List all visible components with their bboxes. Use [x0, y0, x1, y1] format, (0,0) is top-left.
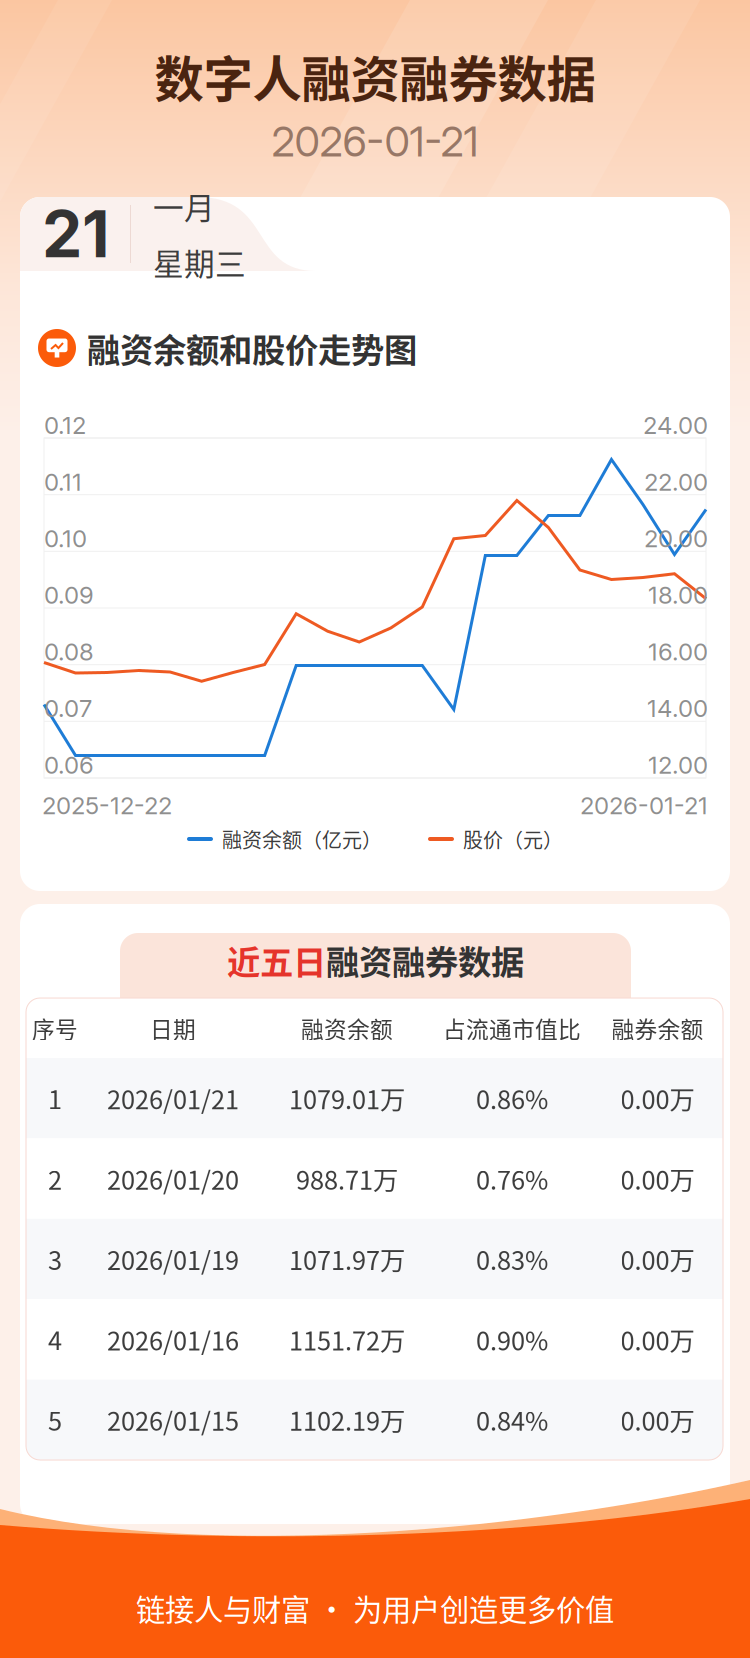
- staticText: 22.00: [644, 467, 708, 496]
- staticText: 2: [48, 1160, 62, 1197]
- staticText: 日期: [150, 1012, 196, 1044]
- staticText: 0.07: [44, 694, 92, 723]
- staticText: 16.00: [648, 637, 708, 666]
- staticText: 2026-01-21: [580, 791, 708, 820]
- staticText: 融资融券数据: [326, 936, 524, 984]
- staticText: 序号: [32, 1012, 78, 1044]
- staticText: 0.08: [44, 637, 94, 666]
- staticText: 0.00万: [620, 1321, 694, 1358]
- staticText: 0.84%: [476, 1401, 548, 1438]
- staticText: 2026/01/15: [107, 1401, 239, 1438]
- staticText: 0.86%: [476, 1080, 548, 1117]
- staticText: 一月: [153, 184, 215, 228]
- staticText: 0.83%: [476, 1241, 548, 1277]
- staticText: 占流通市值比: [443, 1012, 581, 1044]
- staticText: 3: [48, 1241, 62, 1277]
- staticText: 0.00万: [620, 1401, 694, 1438]
- staticText: 1151.72万: [289, 1321, 405, 1358]
- staticText: 988.71万: [296, 1160, 398, 1197]
- staticText: 2026/01/19: [107, 1241, 239, 1277]
- staticText: 21: [42, 195, 110, 273]
- staticText: 融资余额（亿元）: [222, 824, 382, 853]
- staticText: 融资余额和股价走势图: [87, 324, 417, 372]
- staticText: 股价（元）: [463, 824, 563, 853]
- staticText: 链接人与财富 · 为用户创造更多价值: [136, 1587, 614, 1629]
- staticText: 0.00万: [620, 1080, 694, 1117]
- staticText: 2025-12-22: [42, 791, 172, 820]
- staticText: 2026/01/16: [107, 1321, 239, 1358]
- staticText: 24.00: [643, 411, 708, 440]
- staticText: 融券余额: [611, 1012, 703, 1044]
- staticText: 融资余额: [301, 1012, 393, 1044]
- staticText: 0.90%: [476, 1321, 548, 1358]
- staticText: 1: [48, 1080, 62, 1117]
- staticText: 4: [48, 1321, 62, 1358]
- staticText: 0.12: [44, 411, 86, 440]
- staticText: 0.10: [44, 524, 87, 553]
- staticText: 14.00: [647, 694, 708, 723]
- staticText: 12.00: [648, 750, 708, 779]
- staticText: 星期三: [153, 240, 246, 284]
- staticText: 1102.19万: [289, 1401, 405, 1438]
- staticText: 0.00万: [620, 1241, 694, 1277]
- staticText: 0.09: [44, 581, 94, 610]
- staticText: 1079.01万: [289, 1080, 405, 1117]
- staticText: 0.76%: [476, 1160, 548, 1197]
- staticText: 18.00: [648, 581, 708, 610]
- staticText: 20.00: [644, 524, 708, 553]
- staticText: 近五日: [227, 936, 326, 984]
- staticText: 2026/01/21: [107, 1080, 239, 1117]
- staticText: 0.00万: [620, 1160, 694, 1197]
- staticText: 1071.97万: [289, 1241, 405, 1277]
- staticText: 2026/01/20: [107, 1160, 239, 1197]
- staticText: 0.06: [44, 750, 94, 779]
- staticText: 0.11: [44, 467, 82, 496]
- staticText: 数字人融资融券数据: [154, 40, 595, 111]
- staticText: 5: [48, 1401, 62, 1438]
- staticText: 2026-01-21: [271, 116, 478, 166]
